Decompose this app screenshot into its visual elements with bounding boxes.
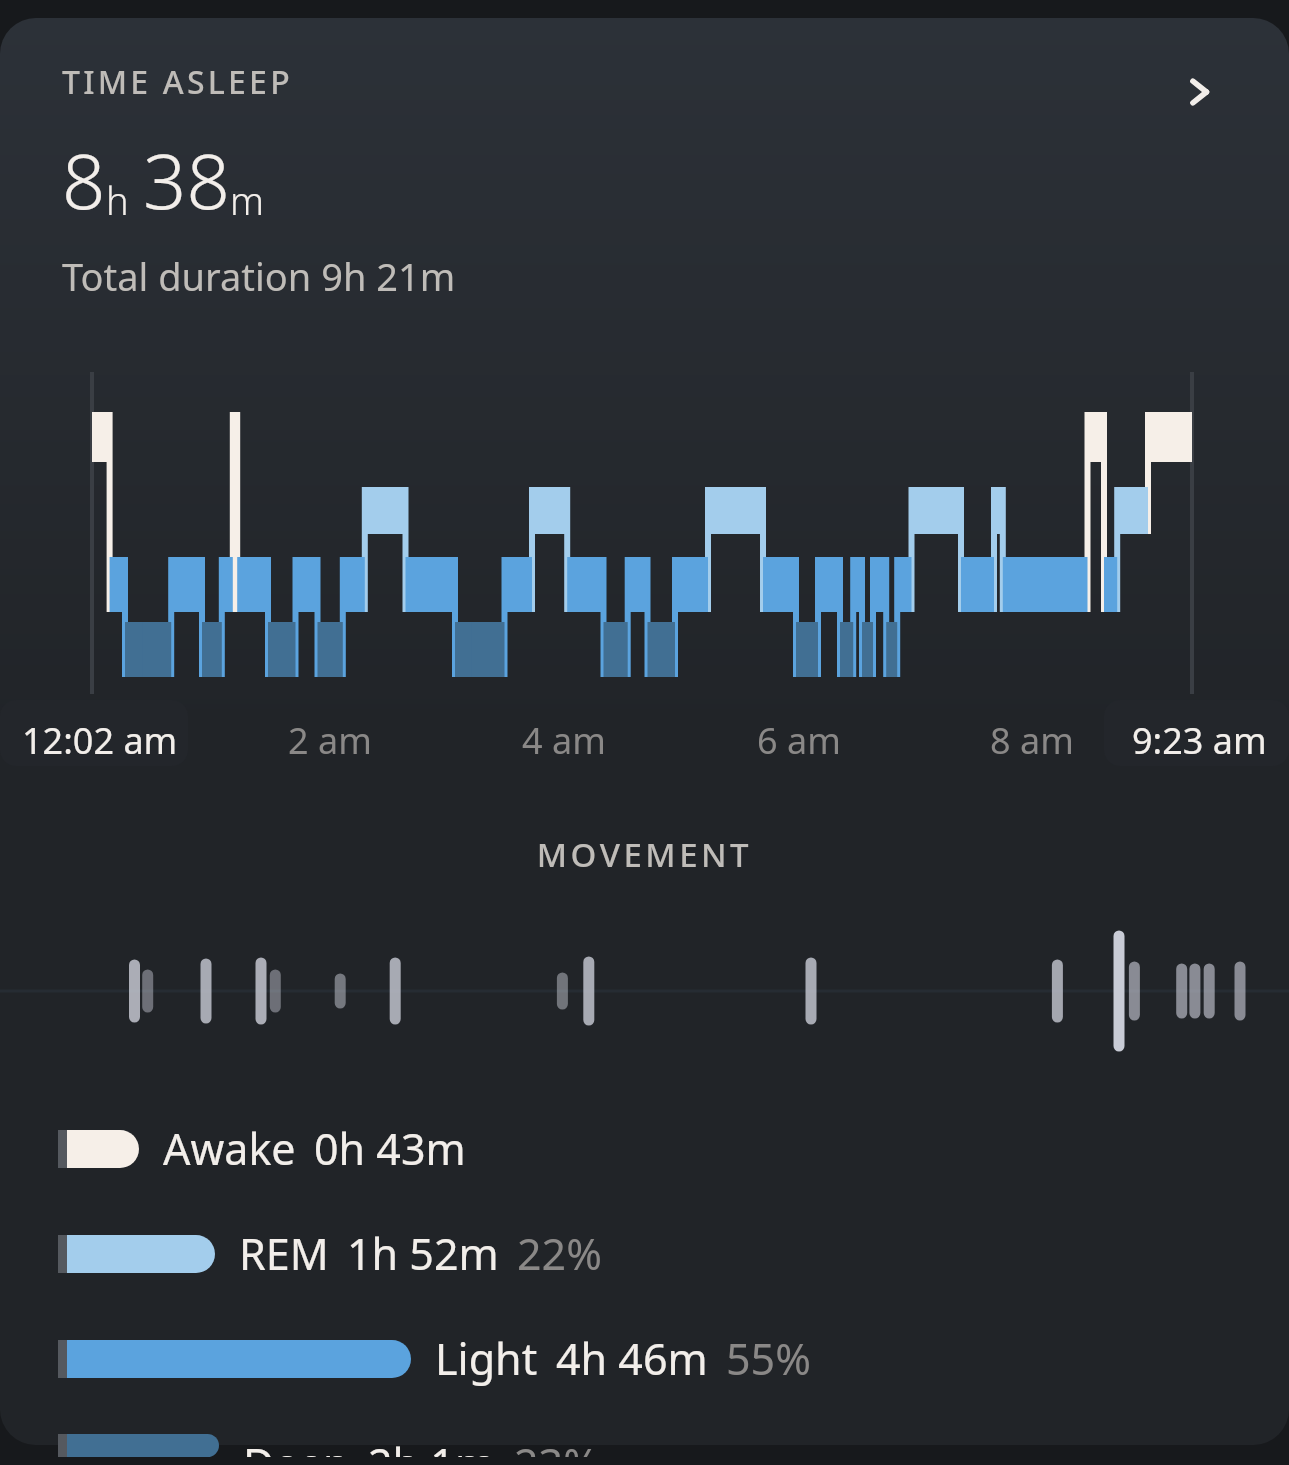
staticText: 9:23 am xyxy=(1132,716,1267,765)
staticText: m xyxy=(230,174,264,226)
staticText: Light xyxy=(435,1329,538,1388)
button[interactable]: Deep xyxy=(0,1426,1289,1465)
staticText: 4h 46m xyxy=(556,1329,708,1388)
staticText: 8 am xyxy=(990,716,1074,765)
staticText: Total duration 9h 21m xyxy=(62,250,456,302)
staticText: 0h 43m xyxy=(314,1119,466,1178)
staticText: TIME ASLEEP xyxy=(62,60,293,104)
staticText: 38 xyxy=(143,128,230,232)
staticText: MOVEMENT xyxy=(0,832,1289,877)
button[interactable]: Light xyxy=(0,1321,1289,1396)
staticText: 4 am xyxy=(522,716,606,765)
staticText: 55% xyxy=(726,1329,811,1388)
button[interactable]: REM xyxy=(0,1216,1289,1291)
staticText: REM xyxy=(239,1224,329,1283)
button[interactable]: TIME ASLEEP xyxy=(0,60,1289,302)
staticText: Deep xyxy=(243,1434,350,1457)
button[interactable]: Open sleep details xyxy=(1171,64,1227,120)
staticText: 2 am xyxy=(288,716,372,765)
staticText: 8 xyxy=(62,128,106,232)
staticText: 22% xyxy=(517,1224,602,1283)
staticText: h xyxy=(106,174,129,226)
button[interactable]: Awake xyxy=(0,1111,1289,1186)
staticText: 1h 52m xyxy=(347,1224,499,1283)
staticText: 23% xyxy=(514,1434,599,1457)
staticText: 2h 1m xyxy=(368,1434,496,1457)
staticText: 12:02 am xyxy=(22,716,178,765)
staticText: Awake xyxy=(163,1119,296,1178)
staticText: 6 am xyxy=(757,716,841,765)
